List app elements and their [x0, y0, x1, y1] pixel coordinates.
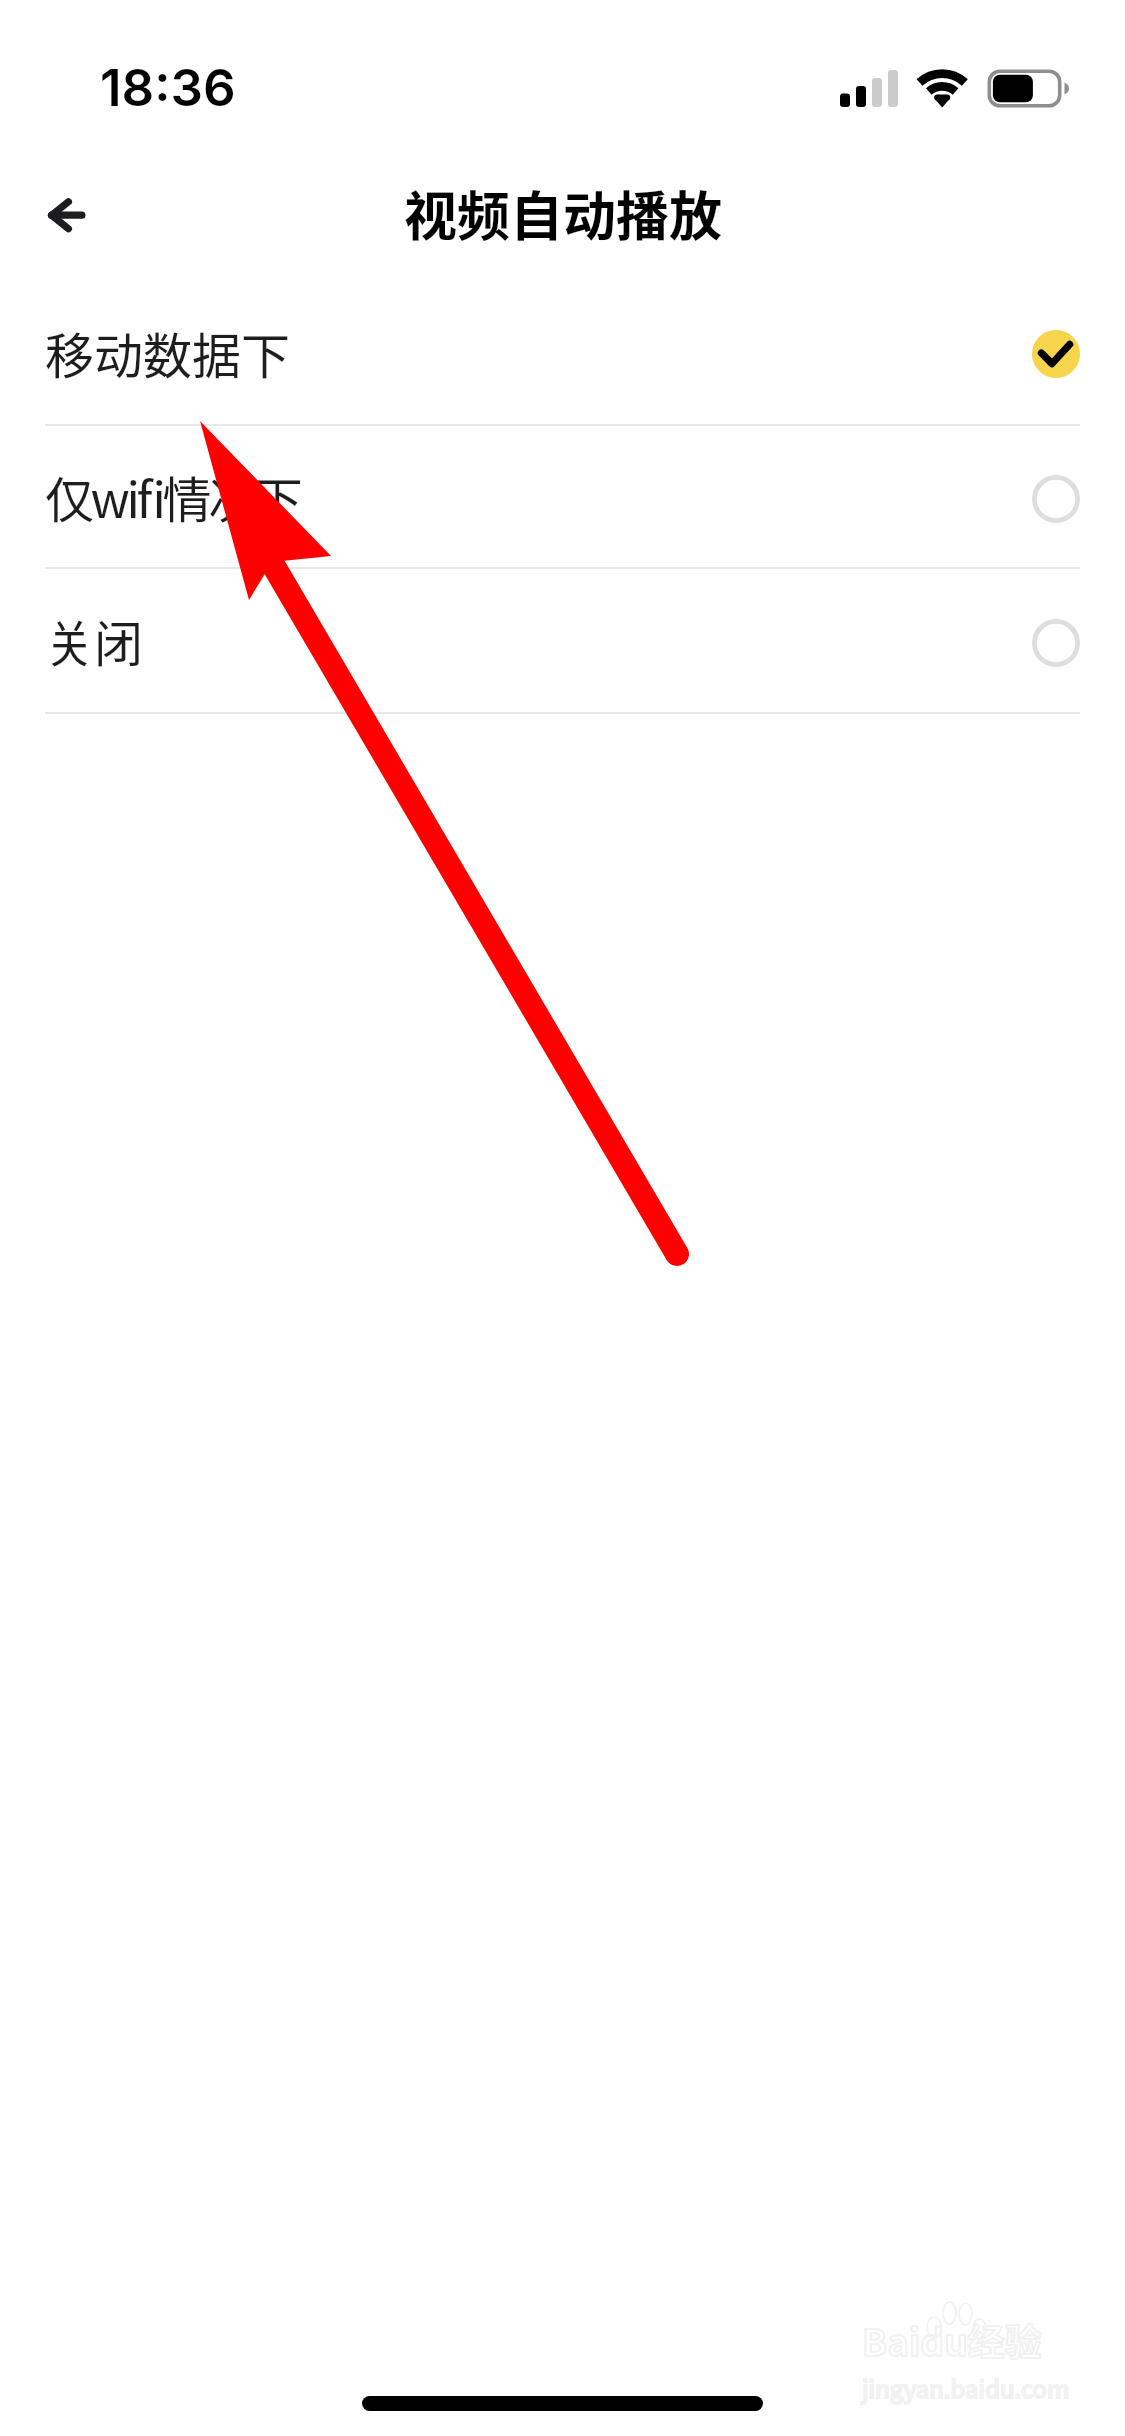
- staticText: jingyan.baidu.com: [862, 2370, 1070, 2405]
- staticText: Baidu经验: [862, 2313, 1042, 2367]
- button[interactable]: 关闭: [0, 569, 1125, 712]
- staticText: 关闭: [45, 605, 144, 676]
- staticText: 移动数据下: [45, 317, 291, 388]
- staticText: 仅wifi情况下: [45, 461, 300, 532]
- button[interactable]: Back: [20, 170, 110, 260]
- button[interactable]: 仅wifi情况下: [0, 426, 1125, 567]
- staticText: 18:36: [100, 57, 236, 119]
- button[interactable]: 移动数据下: [0, 280, 1125, 424]
- staticText: 视频自动播放: [404, 175, 722, 252]
